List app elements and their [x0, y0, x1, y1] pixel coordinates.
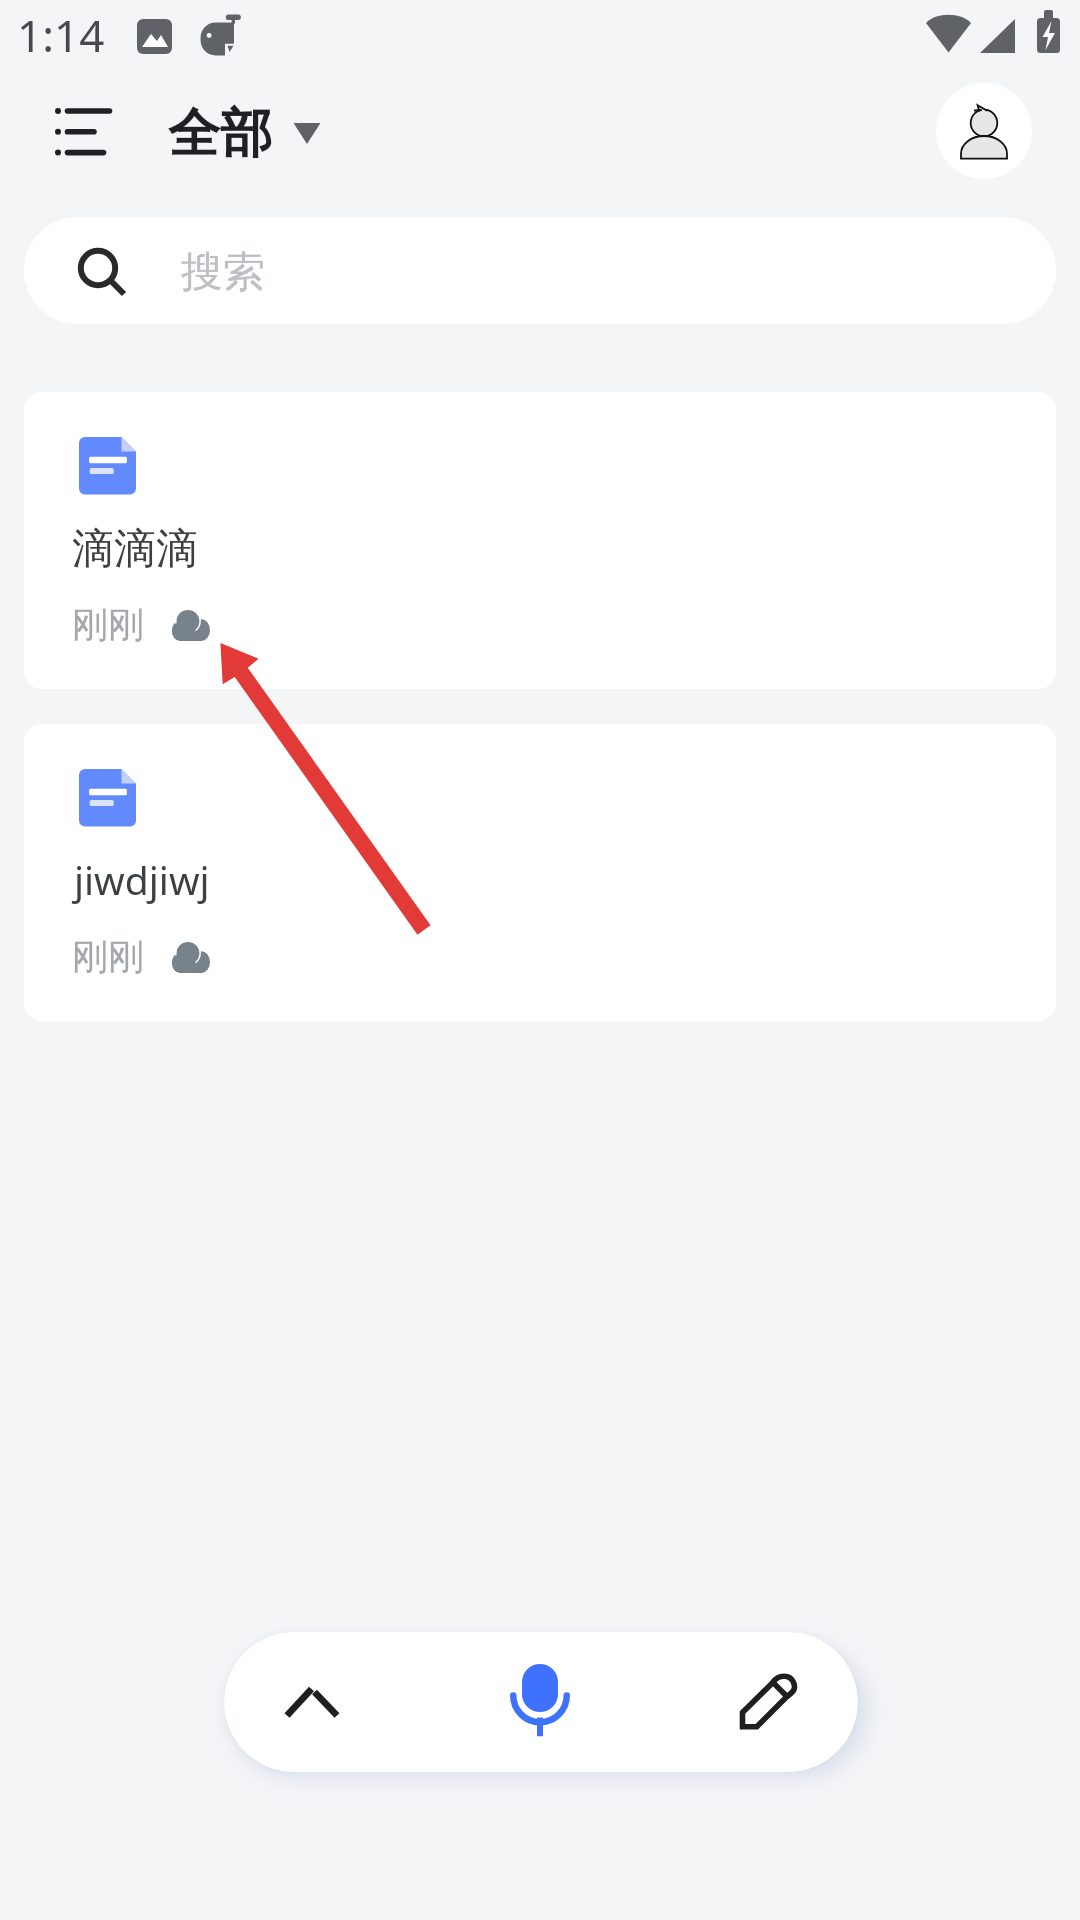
staticText: 搜索 [181, 246, 265, 299]
staticText: 1:14 [17, 5, 105, 65]
staticText: 刚刚 [72, 934, 144, 979]
button[interactable]: Menu [48, 96, 120, 168]
button[interactable]: 滴滴滴 [24, 392, 1056, 689]
button[interactable]: jiwdjiwj [24, 724, 1056, 1021]
staticText: 滴滴滴 [72, 523, 198, 576]
button[interactable]: Account [936, 83, 1032, 179]
staticText: jiwdjiwj [74, 853, 210, 906]
button[interactable]: Voice input [470, 1632, 610, 1772]
button[interactable]: 全部 [168, 101, 325, 167]
button[interactable]: 搜索 [24, 217, 1056, 324]
button[interactable]: New note [697, 1632, 837, 1772]
staticText: 刚刚 [72, 602, 144, 647]
staticText: 全部 [168, 101, 272, 167]
button[interactable]: Expand [242, 1632, 382, 1772]
